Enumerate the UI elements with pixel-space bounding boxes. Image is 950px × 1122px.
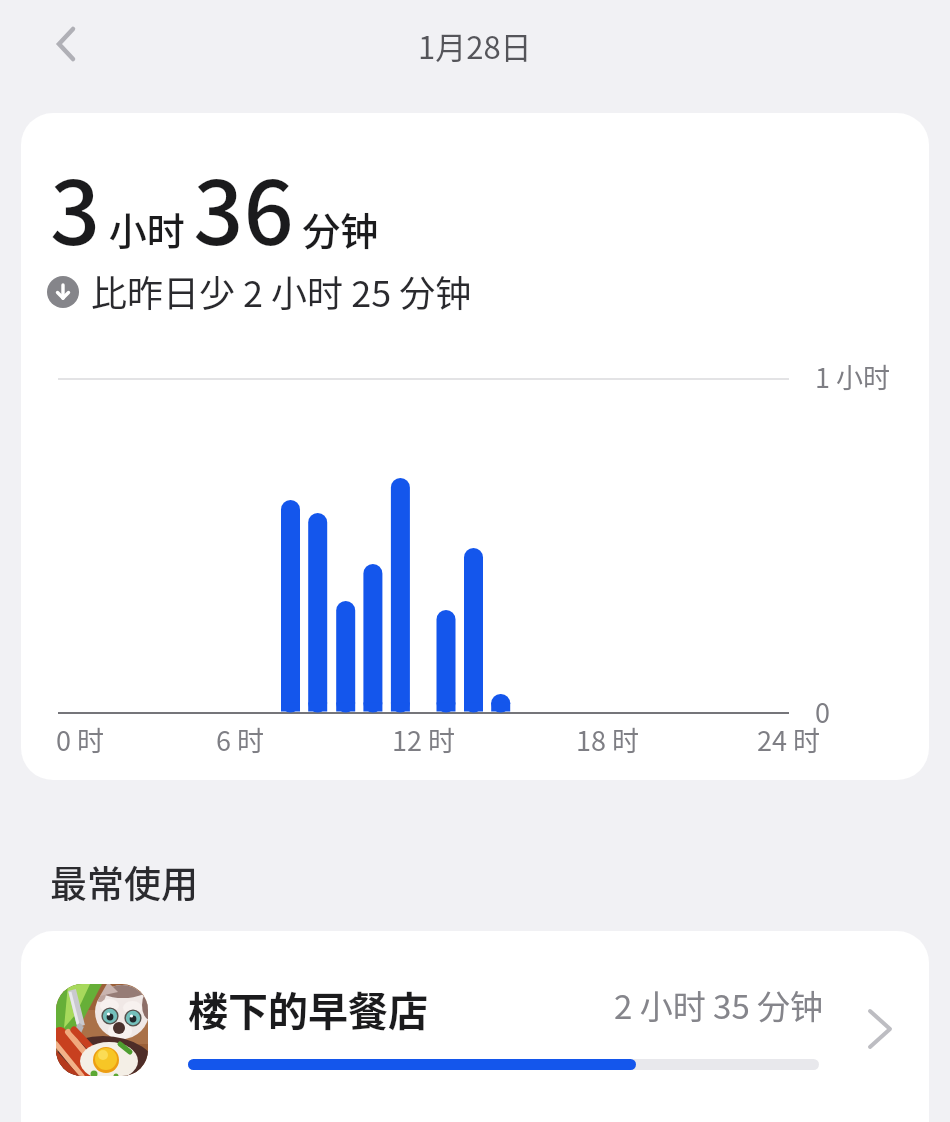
button[interactable] (21, 931, 929, 1122)
button[interactable] (40, 18, 92, 70)
staticText: 最常使用 (50, 855, 198, 909)
staticText: 1 小时 (815, 357, 891, 396)
staticText: 0 时 (56, 720, 105, 759)
staticText: 楼下的早餐店 (188, 980, 428, 1038)
staticText: 12 时 (392, 720, 456, 759)
staticText: 6 时 (216, 720, 265, 759)
staticText: 18 时 (576, 720, 640, 759)
staticText: 0 (815, 692, 830, 731)
staticText: 24 时 (757, 720, 821, 759)
staticText: 1月28日 (418, 23, 532, 68)
staticText: 2 小时 35 分钟 (614, 981, 824, 1029)
staticText: 比昨日少 2 小时 25 分钟 (91, 265, 472, 317)
staticText: 3 小时 36 分钟 (50, 143, 379, 263)
